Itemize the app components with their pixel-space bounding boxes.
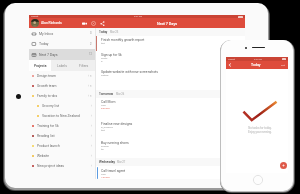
- button[interactable]: Update website with new screenshots: [96, 68, 245, 90]
- staticText: Product launch: [37, 144, 60, 148]
- staticText: Labels: [57, 64, 67, 68]
- staticText: Buy running shoes: [101, 141, 129, 145]
- staticText: Filters: [79, 64, 89, 68]
- button[interactable]: Grocery list: [29, 101, 95, 111]
- staticText: Finalise new designs: [101, 122, 133, 126]
- staticText: New project ideas: [37, 164, 65, 168]
- button[interactable]: Settings: [91, 21, 96, 26]
- staticText: Tomorrow: [99, 92, 114, 96]
- staticText: 5:00 PM: [101, 107, 110, 110]
- staticText: ›: [91, 125, 92, 128]
- button[interactable]: Finish monthly growth report: [96, 36, 245, 51]
- staticText: calls: [101, 173, 106, 176]
- button[interactable]: Reading list: [29, 131, 95, 141]
- staticText: Design team: [37, 74, 56, 78]
- staticText: 9:41 AM: [254, 58, 262, 60]
- staticText: Finish monthly growth report: [101, 38, 145, 42]
- staticText: Mar 27: [117, 161, 126, 164]
- staticText: ›: [91, 105, 92, 108]
- button[interactable]: Vacation to New Zealand: [29, 111, 95, 121]
- staticText: Family to-dos: [37, 94, 58, 98]
- button[interactable]: My Inbox: [29, 28, 95, 39]
- staticText: Wednesday: [99, 160, 115, 164]
- button[interactable]: Buy running shoes: [96, 139, 245, 158]
- staticText: Projects: [34, 64, 47, 68]
- staticText: 2: [90, 43, 92, 46]
- staticText: › ×: [88, 85, 92, 88]
- staticText: Vacation to New Zealand: [42, 114, 80, 118]
- button[interactable]: Messages: [82, 21, 87, 26]
- staticText: Reading list: [37, 134, 55, 138]
- staticText: errands: [101, 145, 109, 148]
- staticText: ›: [91, 165, 92, 168]
- staticText: 3: [90, 32, 92, 35]
- staticText: calls: [101, 104, 106, 107]
- staticText: @1: [101, 148, 105, 151]
- staticText: Todoist: [31, 15, 39, 18]
- staticText: My Inbox: [39, 32, 54, 36]
- button[interactable]: Today: [29, 39, 95, 49]
- button[interactable]: New project ideas: [29, 161, 95, 171]
- staticText: Edit: [281, 64, 286, 67]
- button[interactable]: Projects: [29, 60, 51, 71]
- staticText: 9:41 AM: [134, 15, 143, 18]
- staticText: @ct: [101, 129, 106, 132]
- staticText: Sign up for 5k: [101, 53, 122, 57]
- staticText: Today: [99, 30, 108, 34]
- staticText: Call travel agent: [101, 169, 126, 173]
- staticText: @ct: [101, 42, 106, 45]
- button[interactable]: Back: [228, 63, 232, 67]
- staticText: Mar 25: [110, 31, 119, 34]
- staticText: Today: [251, 63, 261, 67]
- staticText: waiting: [101, 74, 109, 77]
- staticText: Grocery list: [42, 104, 60, 108]
- button[interactable]: Filters: [73, 60, 95, 71]
- button[interactable]: Sign up for 5k: [96, 51, 245, 68]
- button[interactable]: Call Mom: [96, 98, 245, 120]
- staticText: Todoist: [228, 58, 235, 60]
- staticText: health: [101, 57, 108, 60]
- button[interactable]: Training for 5k: [29, 121, 95, 131]
- staticText: ›: [91, 135, 92, 138]
- staticText: Growth team: [37, 84, 57, 88]
- button[interactable]: Finalise new designs: [96, 120, 245, 139]
- button[interactable]: Design team: [29, 71, 95, 81]
- staticText: › ×: [88, 95, 92, 98]
- button[interactable]: Share: [100, 21, 105, 26]
- staticText: #: [101, 60, 103, 63]
- staticText: Training for 5k: [37, 124, 59, 128]
- staticText: 12: [89, 53, 92, 56]
- staticText: Mar 26: [116, 93, 125, 96]
- staticText: Enjoy your evening.: [248, 130, 272, 133]
- button[interactable]: Website: [29, 151, 95, 161]
- staticText: Website: [37, 154, 50, 158]
- staticText: Update website with new screenshots: [101, 70, 158, 74]
- staticText: 1:00 PM: [101, 176, 110, 179]
- button[interactable]: Growth team: [29, 81, 95, 91]
- staticText: ›: [91, 115, 92, 118]
- button[interactable]: Product launch: [29, 141, 95, 151]
- staticText: ›: [91, 145, 92, 148]
- staticText: No tasks for today.: [248, 126, 272, 129]
- staticText: ›: [91, 155, 92, 158]
- staticText: Today: [39, 42, 49, 46]
- button[interactable]: Add task: [280, 162, 287, 169]
- button[interactable]: Family to-dos: [29, 91, 95, 101]
- staticText: › ×: [88, 75, 92, 78]
- button[interactable]: Call travel agent: [97, 167, 244, 179]
- staticText: Alan Richards: [41, 21, 62, 25]
- staticText: in_progress: [101, 126, 113, 129]
- staticText: Next 7 Days: [157, 21, 178, 25]
- button[interactable]: Labels: [51, 60, 73, 71]
- staticText: Call Mom: [101, 100, 116, 104]
- button[interactable]: Next 7 Days: [29, 49, 95, 60]
- staticText: Next 7 Days: [39, 53, 58, 57]
